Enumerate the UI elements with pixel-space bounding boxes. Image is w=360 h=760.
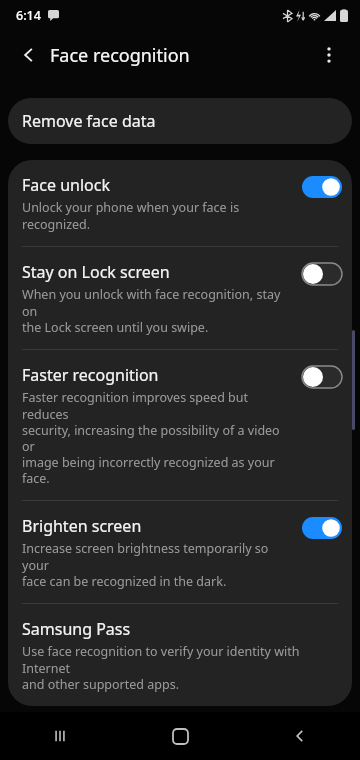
button[interactable]: Faster recognition [8, 350, 352, 500]
button[interactable]: Back [12, 40, 46, 70]
button[interactable]: Toggle on [302, 517, 342, 539]
staticText: Stay on Lock screen [22, 261, 170, 283]
staticText: 6:14 [16, 7, 41, 24]
button[interactable]: Recents [36, 712, 84, 760]
staticText: Use face recognition to verify your iden… [22, 643, 342, 692]
staticText: When you unlock with face recognition, s… [22, 286, 294, 335]
staticText: Face recognition [50, 43, 190, 68]
button[interactable]: Face unlock [8, 160, 352, 246]
button[interactable]: More options [312, 40, 346, 70]
button[interactable]: Toggle off [302, 366, 342, 388]
button[interactable]: Brighten screen [8, 501, 352, 603]
button[interactable]: Remove face data [8, 98, 352, 144]
button[interactable]: Home [156, 712, 204, 760]
staticText: Face unlock [22, 174, 110, 196]
staticText: Remove face data [22, 110, 156, 132]
staticText: Unlock your phone when your face is reco… [22, 199, 240, 232]
button[interactable]: Toggle off [302, 263, 342, 285]
staticText: Samsung Pass [22, 618, 131, 640]
staticText: Brighten screen [22, 515, 142, 537]
button[interactable]: Samsung Pass [8, 604, 352, 706]
staticText: Increase screen brightness temporarily s… [22, 540, 294, 589]
button[interactable]: Back [276, 712, 324, 760]
staticText: Faster recognition improves speed but re… [22, 389, 294, 486]
button[interactable]: Stay on Lock screen [8, 247, 352, 349]
staticText: Faster recognition [22, 364, 159, 386]
button[interactable]: Toggle on [302, 176, 342, 198]
